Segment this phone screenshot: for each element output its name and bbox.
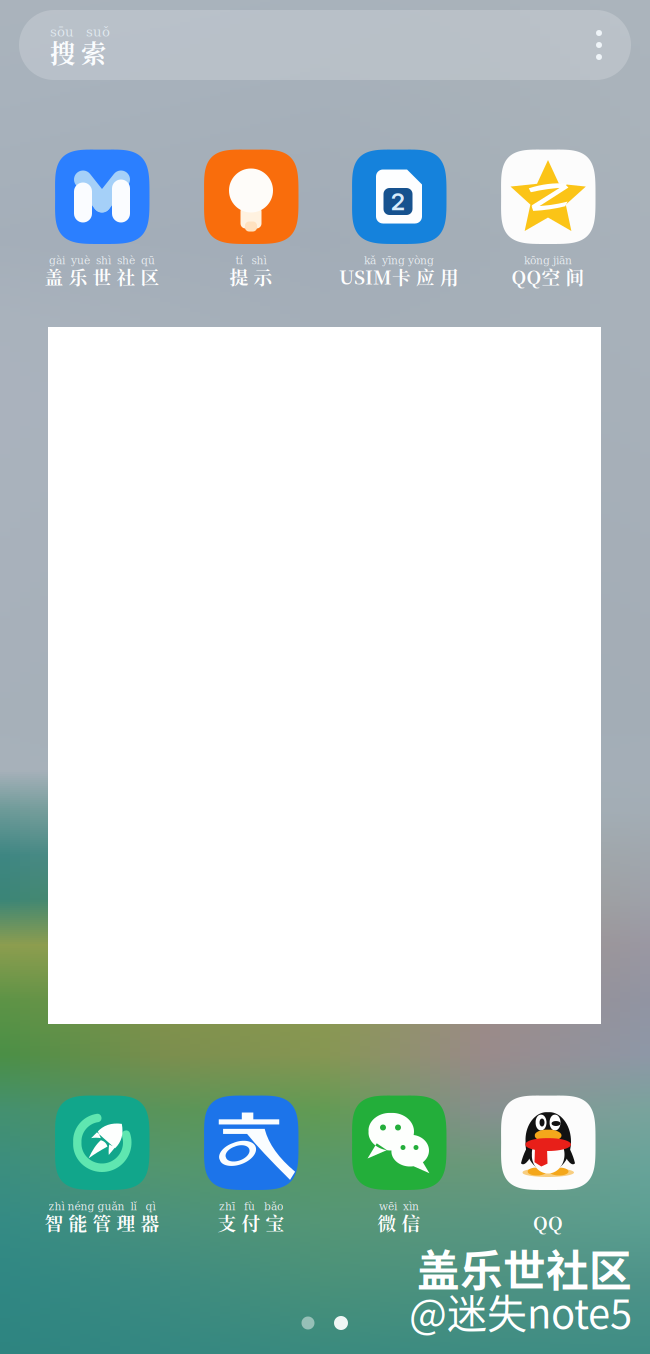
staticText: 支 付 宝	[217, 1209, 284, 1236]
button[interactable]: 2	[325, 146, 473, 289]
staticText: USIM卡 应 用	[339, 263, 459, 290]
staticText: 智 能 管 理 器	[44, 1209, 159, 1236]
button[interactable]: zhī fù bǎo	[177, 1092, 325, 1235]
staticText: 微 信	[377, 1209, 420, 1236]
staticText: 2	[390, 187, 405, 216]
staticText: kǎ yīng yòng	[364, 254, 434, 267]
staticText: 盖 乐 世 社 区	[44, 263, 159, 290]
staticText: sōu suǒ	[50, 24, 110, 40]
button[interactable]: wēi xìn	[325, 1092, 473, 1235]
staticText: tí shì	[235, 254, 266, 267]
staticText: kōng jiān	[524, 254, 572, 267]
staticText: wēi xìn	[379, 1200, 419, 1213]
button[interactable]: tí shì	[177, 146, 325, 289]
staticText: zhì néng guǎn lǐ qì	[48, 1200, 155, 1213]
staticText: gài yuè shì shè qū	[49, 254, 155, 267]
button[interactable]: sōu suǒ	[19, 10, 631, 80]
staticText: zhī fù bǎo	[219, 1200, 283, 1213]
button[interactable]: gài yuè shì shè qū	[28, 146, 176, 289]
button[interactable]	[474, 1092, 622, 1235]
button[interactable]: zhì néng guǎn lǐ qì	[28, 1092, 176, 1235]
staticText: 提 示	[229, 263, 272, 290]
staticText: @迷失note5	[409, 1282, 632, 1340]
staticText: 盖乐世社区	[417, 1237, 632, 1299]
button[interactable]: kōng jiān	[474, 146, 622, 289]
staticText: 搜 索	[50, 34, 106, 70]
staticText: QQ	[533, 1209, 563, 1236]
staticText: QQ空 间	[511, 263, 584, 290]
